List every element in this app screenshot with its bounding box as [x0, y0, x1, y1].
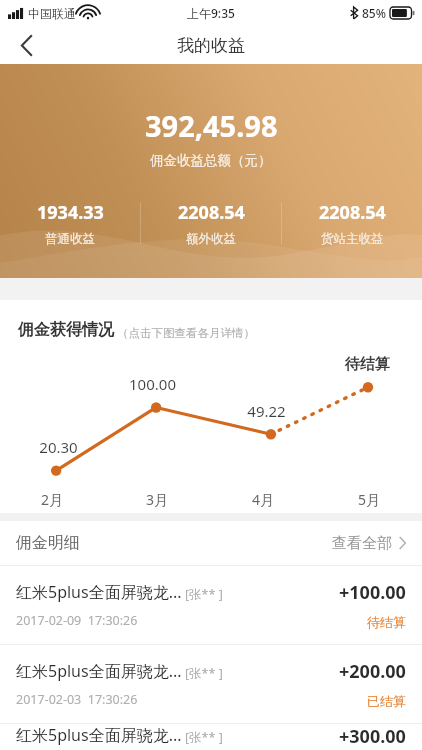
staticText: 中国联通: [28, 6, 76, 21]
button[interactable]: 红米5plus全面屏骁龙...: [0, 724, 422, 750]
staticText: 普通收益: [45, 231, 95, 246]
button[interactable]: 佣金明细: [0, 521, 422, 565]
staticText: 1934.33: [37, 200, 104, 225]
button[interactable]: 红米5plus全面屏骁龙...: [0, 645, 422, 723]
staticText: 待结算: [345, 355, 390, 374]
staticText: 2208.54: [178, 200, 245, 225]
button[interactable]: 1934.33: [0, 200, 140, 246]
staticText: 红米5plus全面屏骁龙...: [16, 581, 182, 603]
button[interactable]: 2208.54: [141, 200, 281, 246]
staticText: 红米5plus全面屏骁龙...: [16, 660, 182, 682]
staticText: 我的收益: [177, 35, 245, 56]
staticText: 49.22: [247, 401, 286, 421]
button[interactable]: Back: [0, 26, 52, 64]
staticText: 红米5plus全面屏骁龙...: [16, 724, 182, 746]
staticText: [张** ]: [185, 665, 223, 682]
staticText: 上午9:35: [187, 5, 235, 21]
button[interactable]: 2208.54: [282, 200, 422, 246]
staticText: 392,45.98: [145, 106, 278, 145]
staticText: 85%: [362, 5, 386, 21]
staticText: 佣金收益总额（元）: [150, 152, 272, 169]
staticText: 3月: [146, 490, 169, 509]
staticText: [张** ]: [185, 586, 223, 603]
staticText: 额外收益: [186, 231, 236, 246]
staticText: [张** ]: [185, 729, 223, 746]
staticText: +100.00: [339, 580, 406, 605]
staticText: +300.00: [339, 724, 406, 749]
staticText: 查看全部: [332, 534, 392, 553]
staticText: 货站主收益: [321, 231, 384, 246]
staticText: +200.00: [339, 659, 406, 684]
staticText: 2017-02-09 17:30:26: [16, 612, 138, 629]
staticText: 已结算: [367, 693, 406, 709]
button[interactable]: 20.30: [0, 340, 422, 513]
staticText: 佣金获得情况: [18, 320, 114, 340]
staticText: （点击下图查看各月详情）: [117, 326, 255, 340]
staticText: 2017-02-03 17:30:26: [16, 691, 138, 708]
button[interactable]: 红米5plus全面屏骁龙...: [0, 566, 422, 644]
staticText: 100.00: [129, 374, 176, 394]
staticText: 佣金明细: [16, 533, 80, 553]
staticText: 20.30: [39, 437, 78, 457]
staticText: 2208.54: [319, 200, 386, 225]
staticText: 待结算: [367, 614, 406, 630]
staticText: 2月: [41, 490, 64, 509]
staticText: 5月: [358, 490, 381, 509]
staticText: 4月: [252, 490, 275, 509]
